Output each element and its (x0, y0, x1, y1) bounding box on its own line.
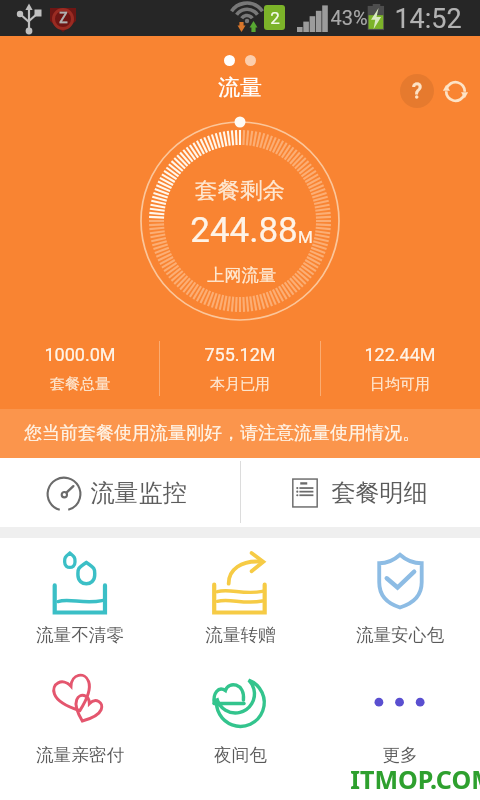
staticText: 244.88 (190, 210, 298, 251)
staticText: 日均可用 (370, 375, 430, 394)
staticText: 43% (330, 6, 368, 29)
staticText: 本月已用 (210, 375, 270, 394)
staticText: 流量转赠 (205, 624, 276, 646)
staticText: 流量不清零 (36, 624, 124, 646)
button[interactable]: 流量不清零 (0, 538, 160, 658)
staticText: 更多 (382, 744, 418, 766)
button[interactable]: Refresh (438, 74, 472, 108)
staticText: 流量监控 (90, 478, 187, 508)
staticText: 2 (270, 8, 280, 28)
staticText: 122.44M (364, 344, 436, 365)
button[interactable]: 流量安心包 (320, 538, 480, 658)
button[interactable]: 套餐明细 (240, 458, 480, 527)
staticText: 14:52 (394, 3, 462, 35)
staticText: 套餐明细 (331, 478, 428, 508)
staticText: 夜间包 (214, 744, 267, 766)
button[interactable]: 更多 (320, 658, 480, 778)
staticText: 流量亲密付 (36, 744, 124, 766)
staticText: ? (412, 79, 422, 104)
staticText: 1000.0M (44, 344, 116, 365)
staticText: Z (59, 10, 68, 26)
staticText: 套餐剩余 (195, 176, 285, 204)
button[interactable]: 流量监控 (0, 458, 240, 527)
staticText: 套餐总量 (50, 375, 110, 394)
button[interactable]: 流量亲密付 (0, 658, 160, 778)
staticText: 您当前套餐使用流量刚好，请注意流量使用情况。 (24, 422, 420, 445)
staticText: 流量安心包 (356, 624, 444, 646)
staticText: 755.12M (204, 344, 276, 365)
button[interactable]: 流量转赠 (160, 538, 320, 658)
staticText: 上网流量 (207, 264, 276, 286)
staticText: M (298, 227, 313, 247)
button[interactable]: Help (400, 74, 434, 108)
button[interactable]: 夜间包 (160, 658, 320, 778)
staticText: 流量 (218, 74, 262, 102)
staticText: ITMOP.COM (350, 762, 480, 796)
